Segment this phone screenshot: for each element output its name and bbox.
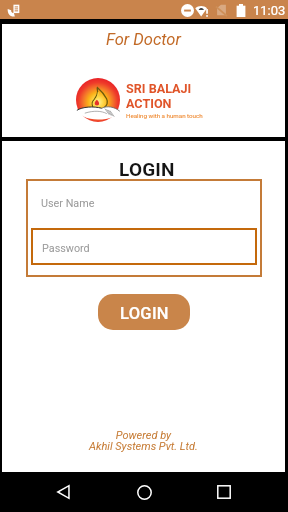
staticText: LOGIN bbox=[120, 304, 169, 323]
button[interactable]: User Name bbox=[26, 179, 262, 228]
staticText: Password bbox=[42, 242, 90, 255]
staticText: ACTION bbox=[126, 96, 172, 111]
staticText: SRI BALAJI bbox=[126, 81, 192, 96]
staticText: 11:03 bbox=[253, 3, 286, 18]
staticText: Healing with a human touch bbox=[126, 112, 203, 119]
staticText: User Name bbox=[41, 197, 95, 210]
button[interactable]: Home bbox=[122, 473, 166, 511]
button[interactable]: Recent apps bbox=[202, 473, 246, 511]
staticText: LOGIN bbox=[119, 158, 175, 180]
button[interactable]: Password bbox=[31, 228, 257, 265]
staticText: Powered by Akhil Systems Pvt. Ltd. bbox=[2, 429, 285, 452]
button[interactable]: LOGIN bbox=[98, 294, 190, 330]
button[interactable]: Back bbox=[41, 473, 85, 511]
staticText: For Doctor bbox=[106, 30, 181, 49]
